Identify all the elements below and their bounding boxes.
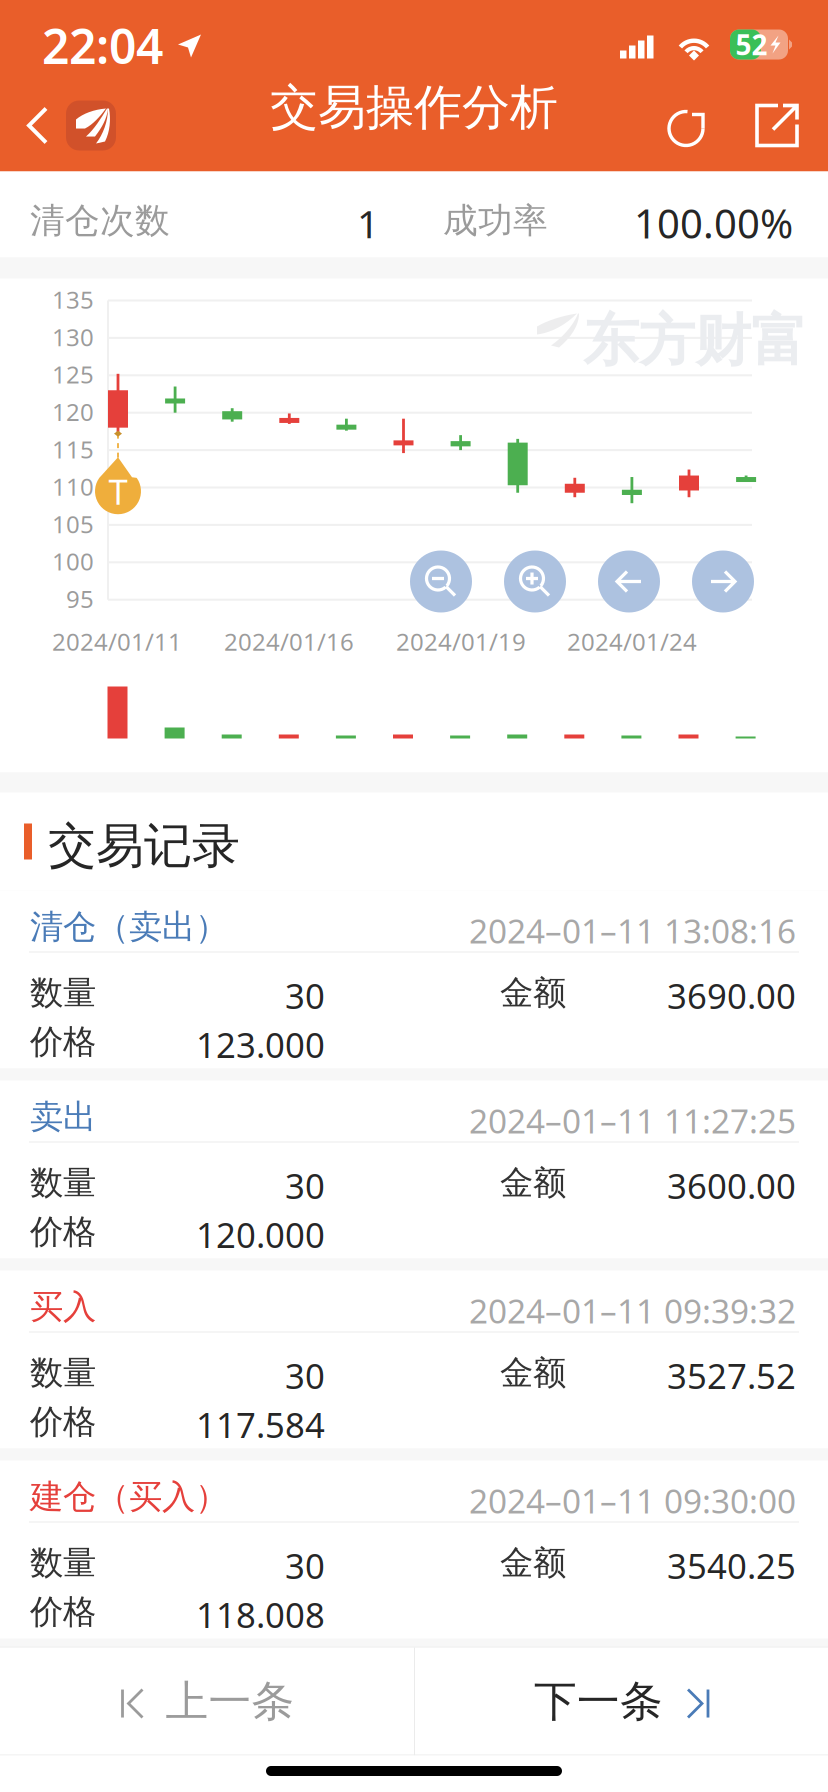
staticText: 清仓（卖出） [30,906,228,947]
staticText: 交易记录 [48,816,240,875]
staticText: 价格 [30,1401,96,1442]
staticText: 117.584 [196,1401,325,1447]
staticText: 2024–01–11 11:27:25 [469,1098,796,1143]
button[interactable]: Back [0,91,128,159]
staticText: 52 [735,26,767,63]
button[interactable]: 上一条 [0,1647,414,1755]
staticText: 30 [285,1162,325,1208]
staticText: 数量 [30,1162,96,1203]
staticText: 30 [285,1352,325,1398]
staticText: 2024–01–11 13:08:16 [469,908,796,953]
staticText: 115 [52,433,94,465]
staticText: 100.00% [634,196,793,250]
staticText: 2024/01/16 [224,625,354,657]
button[interactable]: 下一条 [415,1647,828,1755]
staticText: 清仓次数 [30,199,170,242]
staticText: 30 [285,972,325,1018]
button[interactable]: Pan left [598,550,660,612]
staticText: 数量 [30,972,96,1013]
staticText: 135 [52,284,94,315]
staticText: 金额 [500,1542,566,1583]
staticText: 123.000 [196,1021,325,1067]
staticText: 125 [52,358,94,390]
staticText: 22:04 [42,14,163,77]
staticText: 卖出 [30,1096,96,1137]
staticText: 3690.00 [667,972,796,1018]
staticText: 120 [52,396,94,428]
staticText: 2024–01–11 09:39:32 [469,1288,796,1333]
staticText: 下一条 [534,1675,663,1728]
staticText: 成功率 [443,199,548,242]
staticText: 3540.25 [667,1542,796,1588]
staticText: 金额 [500,1162,566,1203]
button[interactable]: Zoom in [504,550,566,612]
staticText: 110 [52,471,94,502]
staticText: 买入 [30,1286,96,1327]
staticText: 2024/01/24 [567,625,697,657]
staticText: T [108,468,127,514]
staticText: 105 [52,508,94,540]
staticText: 118.008 [196,1591,325,1637]
staticText: 1 [357,197,379,249]
button[interactable]: Pan right [692,550,754,612]
staticText: 价格 [30,1021,96,1062]
staticText: 2024–01–11 09:30:00 [469,1478,796,1523]
staticText: 金额 [500,972,566,1013]
staticText: 130 [52,321,94,353]
staticText: 3600.00 [667,1162,796,1208]
staticText: 金额 [500,1352,566,1393]
button[interactable]: Zoom out [410,550,472,612]
staticText: 3527.52 [667,1352,796,1398]
button[interactable]: Refresh [642,91,732,159]
staticText: 价格 [30,1591,96,1632]
staticText: 数量 [30,1542,96,1583]
staticText: 95 [66,583,94,615]
staticText: 东方财富 [583,306,807,375]
staticText: 30 [285,1542,325,1588]
staticText: 价格 [30,1211,96,1252]
staticText: 120.000 [196,1211,325,1257]
staticText: 上一条 [165,1675,294,1728]
staticText: 2024/01/19 [396,625,526,657]
staticText: 建仓（买入） [30,1476,228,1517]
staticText: 2024/01/11 [52,625,182,657]
staticText: 交易操作分析 [270,78,558,137]
button[interactable]: Share [732,91,828,159]
staticText: 100 [52,545,94,577]
staticText: 数量 [30,1352,96,1393]
